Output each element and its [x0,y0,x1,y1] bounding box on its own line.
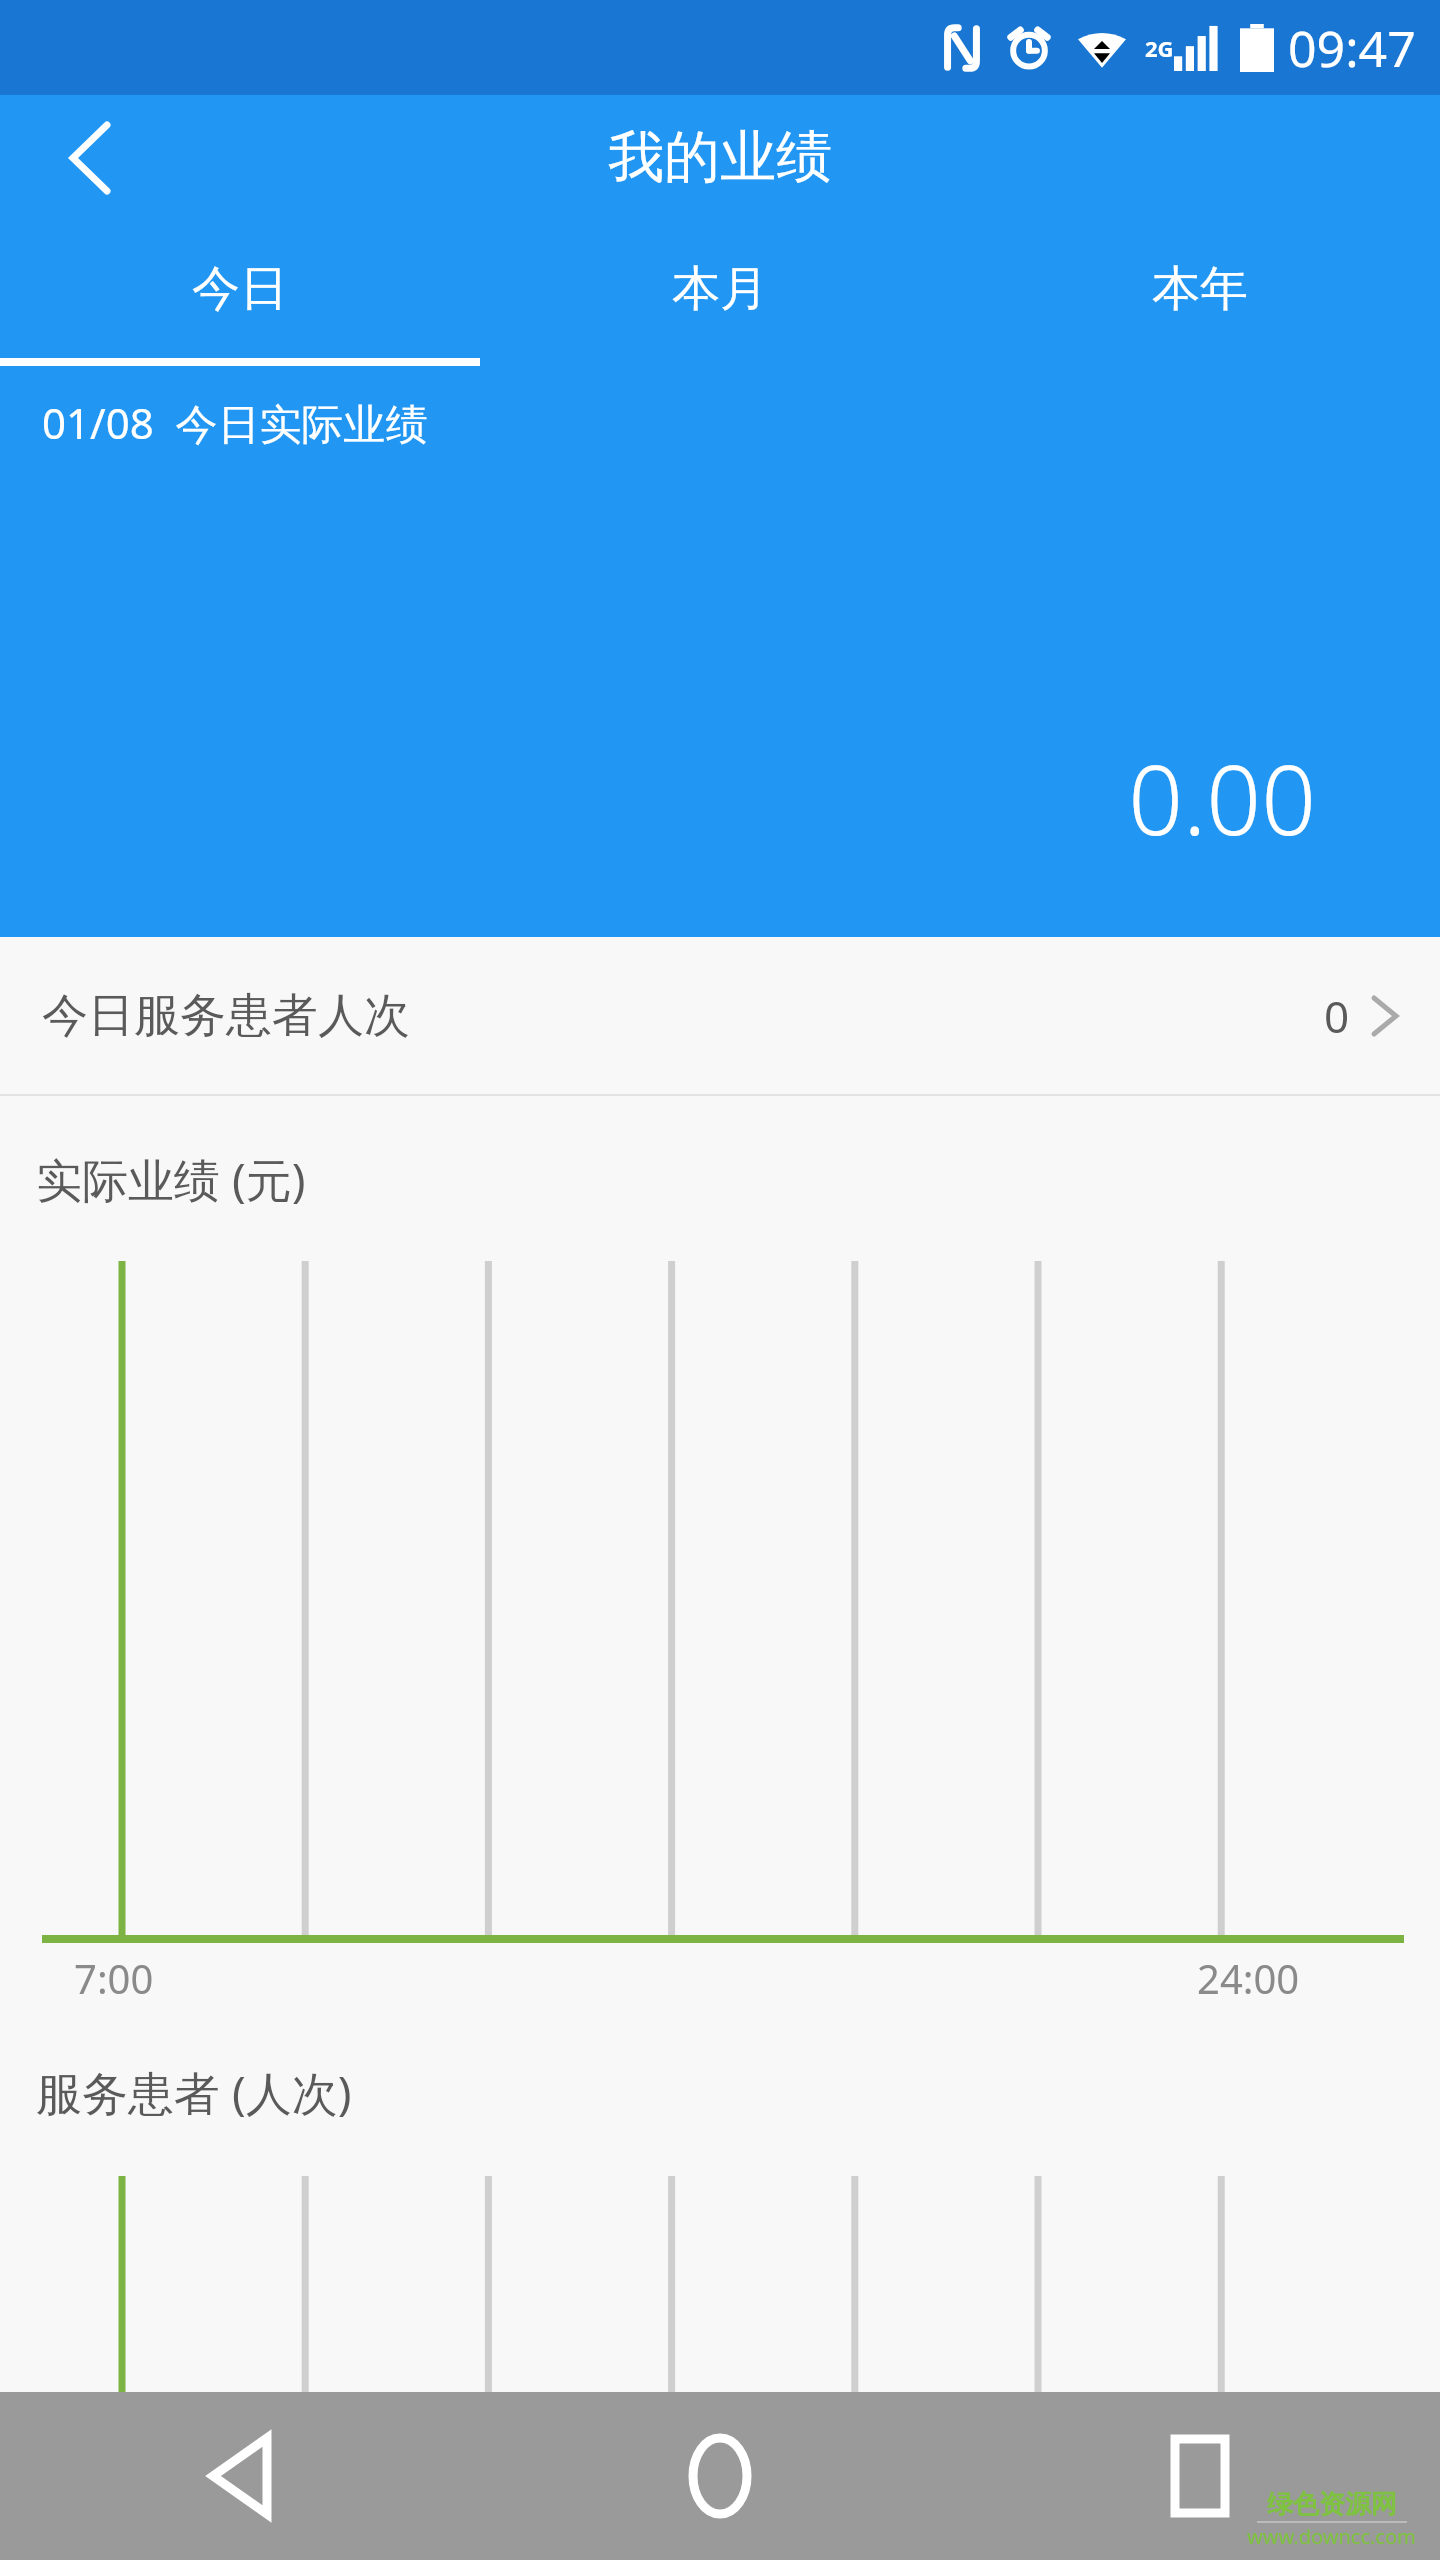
staticText: 本年 [1152,259,1248,319]
button[interactable]: 本月 [480,220,960,358]
button[interactable]: Recents [960,2392,1440,2560]
staticText: 0.00 [0,732,1316,863]
staticText: 09:47 [1288,14,1416,82]
button[interactable]: Home [480,2392,960,2560]
button[interactable]: Back [0,2392,480,2560]
staticText: 今日服务患者人次 [42,987,410,1045]
staticText: 0 [1324,986,1350,1046]
button[interactable]: 今日服务患者人次 [0,937,1440,1094]
staticText: 2G [1145,33,1174,63]
button[interactable]: Back [40,108,140,208]
button[interactable]: 本年 [960,220,1440,358]
staticText: 我的业绩 [608,122,832,193]
staticText: 01/08 今日实际业绩 [42,394,428,451]
staticText: 本月 [672,259,768,319]
staticText: 实际业绩 (元) [36,1148,306,1211]
staticText: 24:00 [1197,1951,1300,2005]
button[interactable]: 今日 [0,220,480,358]
staticText: 绿色资源网 [1267,2488,1397,2521]
staticText: 今日 [192,259,288,319]
staticText: www.downcc.com [1247,2523,1416,2550]
staticText: 7:00 [74,1951,154,2005]
staticText: 服务患者 (人次) [36,2061,352,2124]
